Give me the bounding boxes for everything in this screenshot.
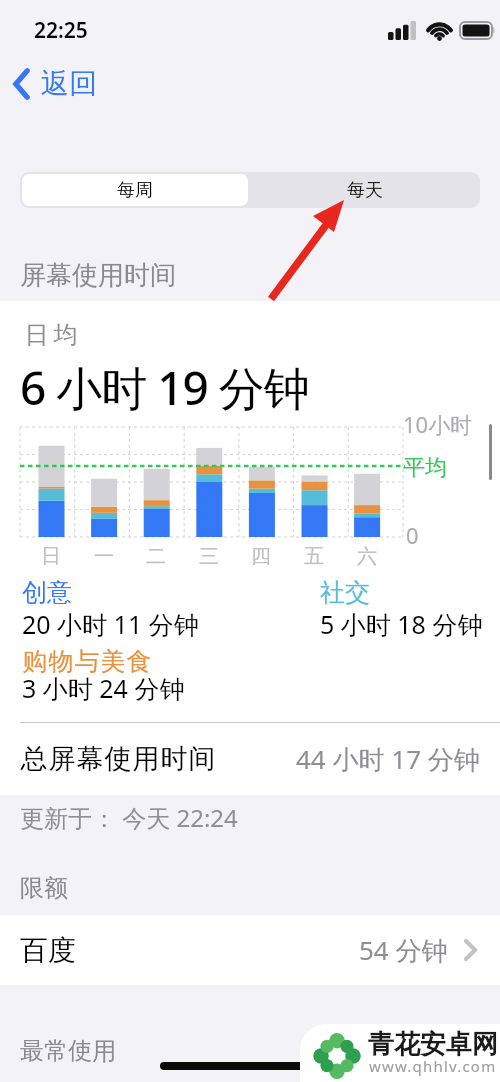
- staticText: 44 小时 17 分钟: [296, 741, 480, 777]
- staticText: 10小时: [403, 409, 473, 439]
- staticText: 5 小时 18 分钟: [320, 607, 483, 641]
- staticText: 54 分钟: [359, 932, 448, 968]
- staticText: 创意: [22, 577, 72, 608]
- staticText: 每天: [347, 179, 383, 202]
- staticText: 青花安卓网: [368, 1028, 498, 1061]
- staticText: 二: [146, 544, 166, 569]
- staticText: 20 小时 11 分钟: [22, 607, 199, 641]
- staticText: 返回: [41, 66, 97, 101]
- staticText: 总屏幕使用时间: [20, 742, 216, 776]
- staticText: 六: [357, 544, 377, 569]
- staticText: 平均: [403, 454, 447, 482]
- staticText: 22:25: [34, 16, 88, 45]
- staticText: 社交: [320, 577, 370, 608]
- staticText: 最常使用: [20, 1036, 116, 1066]
- staticText: 日: [41, 544, 61, 569]
- staticText: 五: [304, 544, 324, 569]
- staticText: 更新于： 今天 22:24: [20, 801, 238, 834]
- staticText: 屏幕使用时间: [20, 259, 176, 292]
- button[interactable]: 每天: [250, 172, 480, 208]
- button[interactable]: 返回: [13, 66, 97, 101]
- staticText: 四: [251, 544, 271, 569]
- staticText: 三: [199, 544, 219, 569]
- staticText: 限额: [20, 873, 68, 903]
- staticText: 百度: [20, 933, 76, 968]
- staticText: www.qhhlv.com: [369, 1056, 497, 1076]
- staticText: 每周: [117, 179, 153, 202]
- button[interactable]: 总屏幕使用时间: [20, 723, 480, 795]
- staticText: 日均: [22, 320, 80, 350]
- staticText: 0: [406, 520, 419, 550]
- staticText: 3 小时 24 分钟: [22, 671, 185, 705]
- staticText: 6 小时 19 分钟: [20, 356, 309, 419]
- staticText: 一: [94, 544, 114, 569]
- staticText: 购物与美食: [22, 646, 152, 677]
- button[interactable]: 每周: [22, 174, 248, 206]
- button[interactable]: 百度: [20, 915, 477, 985]
